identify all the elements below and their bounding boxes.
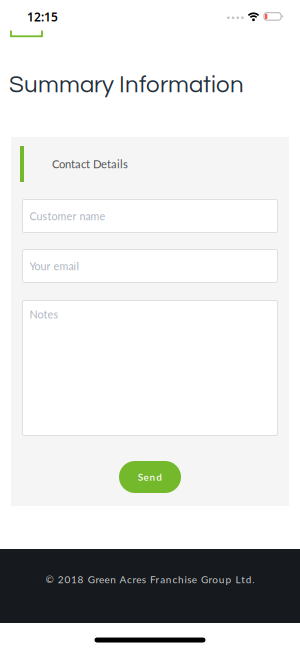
- staticText: © 2018 Green Acres Franchise Group Ltd.: [46, 573, 254, 585]
- staticText: Notes: [29, 308, 58, 321]
- button[interactable]: Notes: [22, 300, 278, 436]
- staticText: 12:15: [27, 9, 58, 25]
- staticText: Your email: [29, 260, 79, 272]
- button[interactable]: Customer name: [22, 199, 278, 233]
- staticText: Customer name: [29, 210, 105, 222]
- button[interactable]: Your email: [22, 249, 278, 283]
- staticText: Contact Details: [52, 157, 128, 171]
- staticText: Send: [138, 471, 162, 483]
- button[interactable]: Send: [119, 461, 181, 493]
- staticText: Summary Information: [9, 72, 244, 97]
